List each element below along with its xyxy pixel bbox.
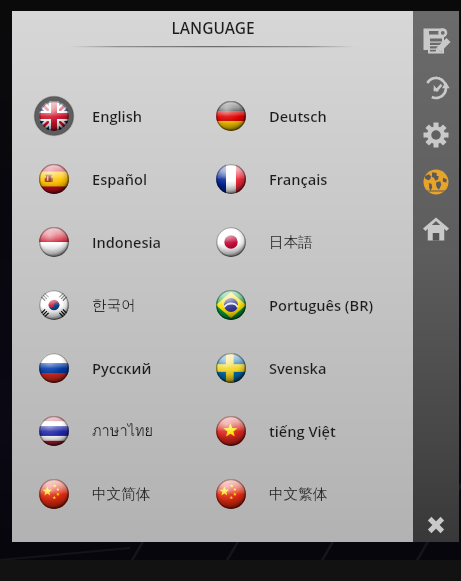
button[interactable]: Home bbox=[413, 205, 459, 252]
button[interactable]: Language bbox=[413, 158, 459, 205]
button[interactable]: ภาษาไทย bbox=[12, 399, 189, 462]
staticText: 中文繁体 bbox=[269, 485, 328, 503]
button[interactable]: 한국어 bbox=[12, 273, 189, 336]
staticText: ภาษาไทย bbox=[92, 419, 154, 442]
button[interactable]: Close bbox=[413, 508, 459, 542]
staticText: Español bbox=[92, 169, 148, 189]
button[interactable]: Notes bbox=[413, 17, 459, 64]
staticText: 한국어 bbox=[92, 296, 136, 314]
staticText: Français bbox=[269, 169, 328, 189]
staticText: 中文简体 bbox=[92, 485, 151, 503]
button[interactable]: History bbox=[413, 64, 459, 111]
staticText: tiếng Việt bbox=[269, 421, 336, 441]
staticText: Русский bbox=[92, 358, 152, 378]
button[interactable]: Français bbox=[189, 147, 413, 210]
staticText: Português (BR) bbox=[269, 295, 374, 315]
staticText: Indonesia bbox=[92, 232, 162, 252]
staticText: Svenska bbox=[269, 358, 327, 378]
button[interactable]: Português (BR) bbox=[189, 273, 413, 336]
button[interactable]: Русский bbox=[12, 336, 189, 399]
button[interactable]: Español bbox=[12, 147, 189, 210]
staticText: 日本語 bbox=[269, 233, 313, 251]
button[interactable]: Deutsch bbox=[189, 84, 413, 147]
staticText: LANGUAGE bbox=[171, 17, 255, 38]
button[interactable]: 中文繁体 bbox=[189, 462, 413, 525]
staticText: Deutsch bbox=[269, 106, 327, 126]
button[interactable]: Indonesia bbox=[12, 210, 189, 273]
staticText: English bbox=[92, 106, 143, 126]
button[interactable]: tiếng Việt bbox=[189, 399, 413, 462]
button[interactable]: Svenska bbox=[189, 336, 413, 399]
button[interactable]: 中文简体 bbox=[12, 462, 189, 525]
button[interactable]: 日本語 bbox=[189, 210, 413, 273]
button[interactable]: Settings bbox=[413, 111, 459, 158]
button[interactable]: English bbox=[12, 84, 189, 147]
